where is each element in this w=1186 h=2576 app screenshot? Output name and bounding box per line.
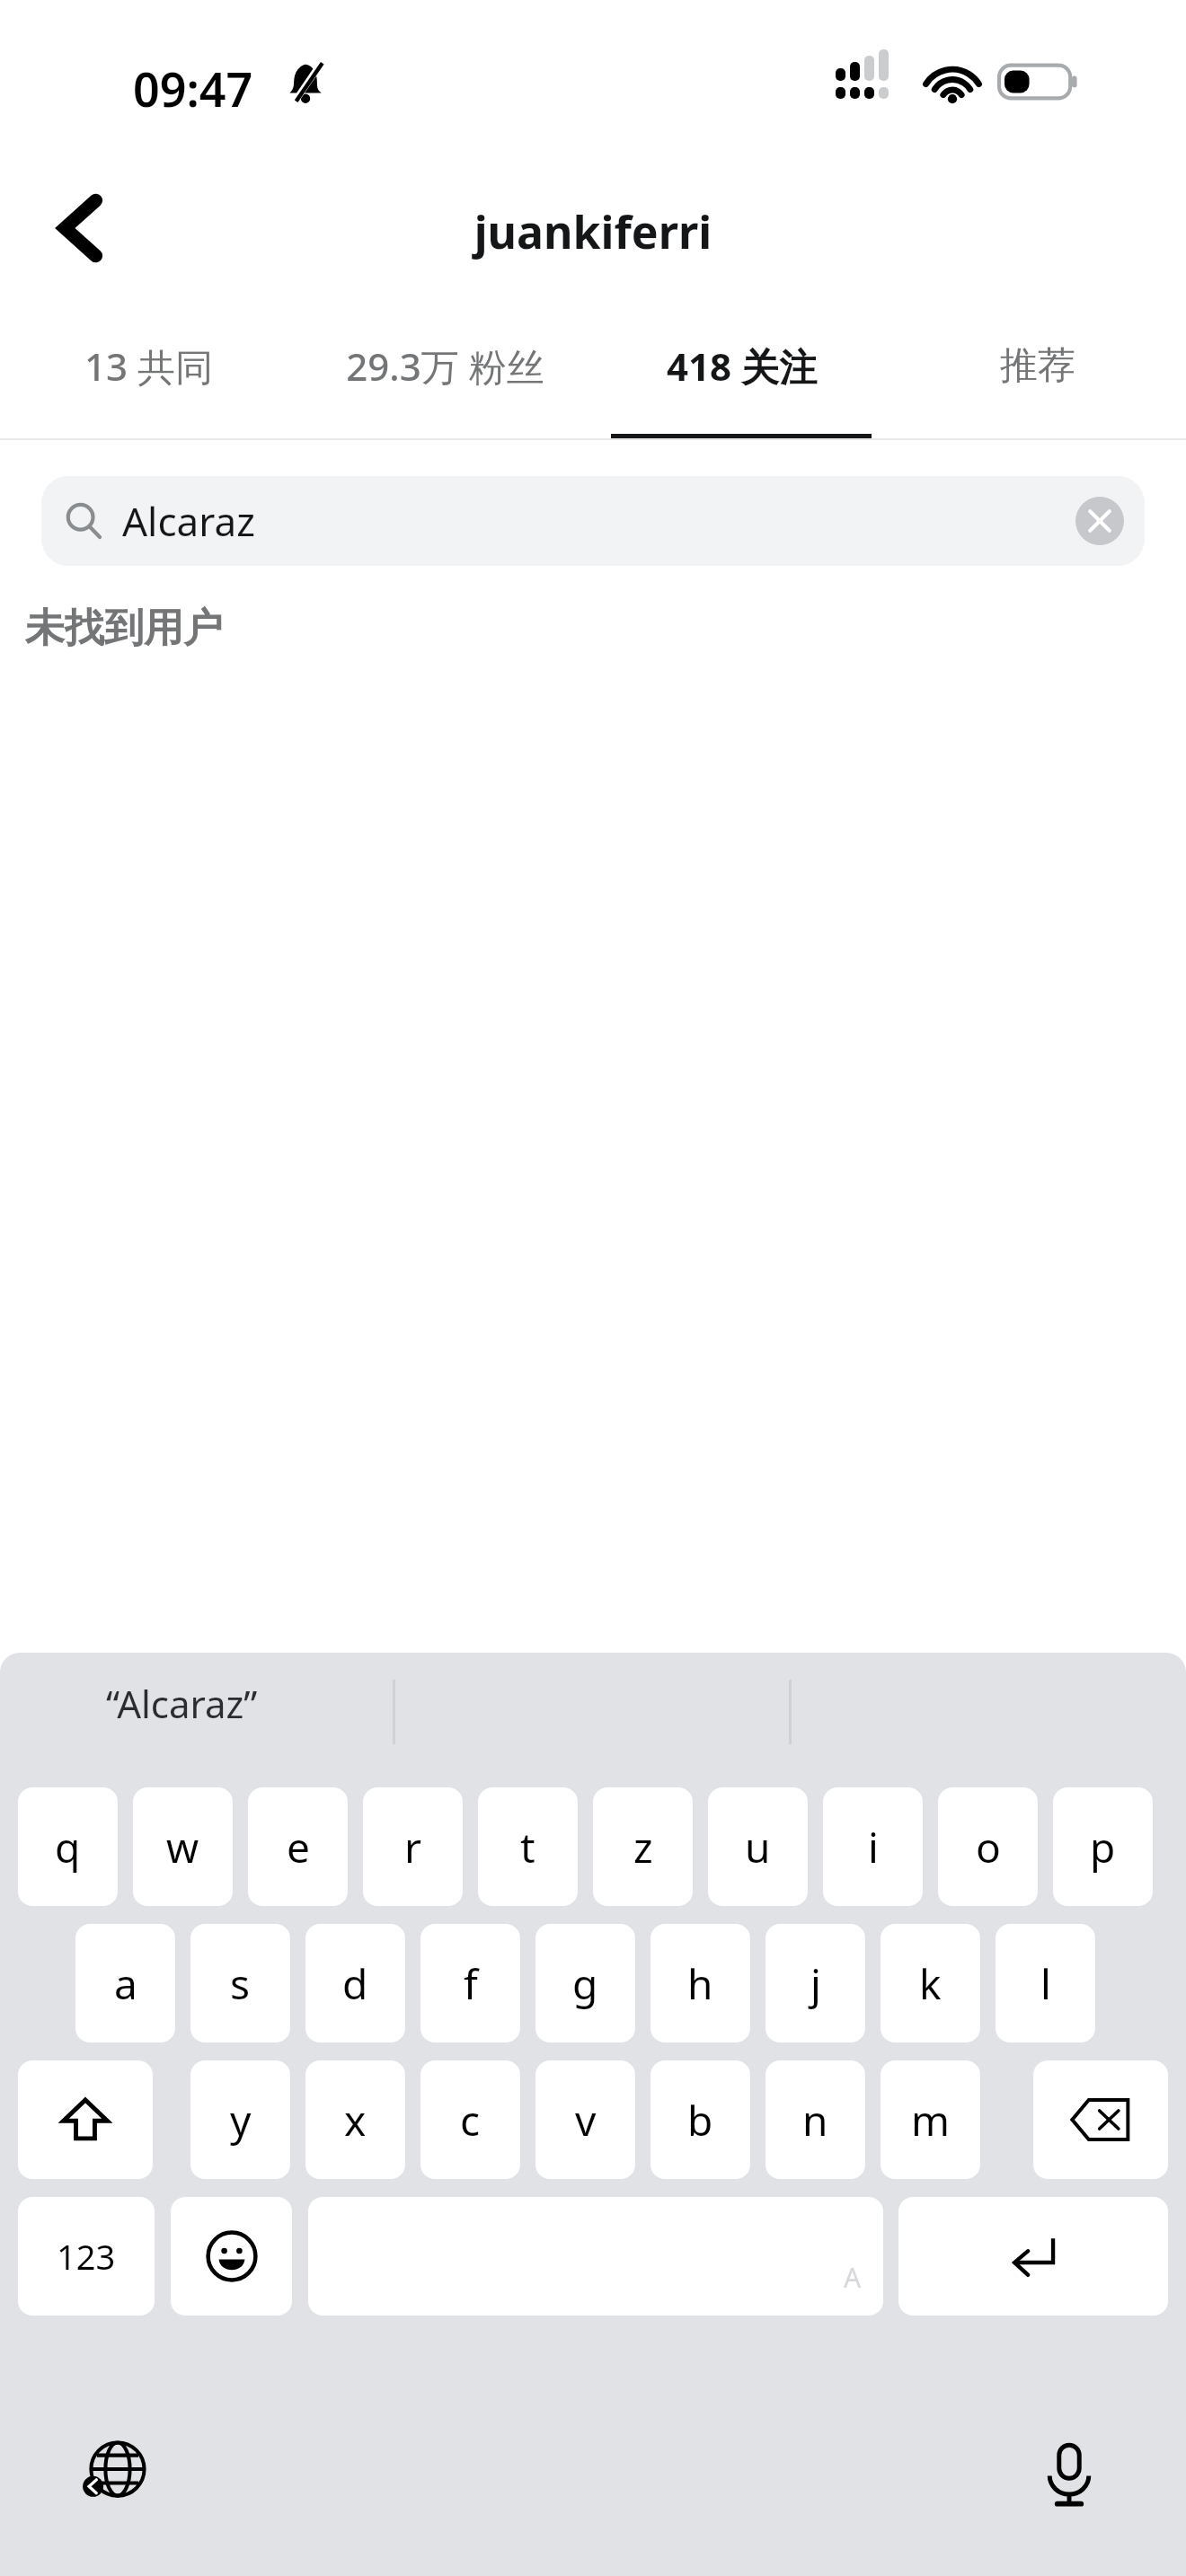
button[interactable]: i bbox=[823, 1787, 923, 1906]
staticText: i bbox=[868, 1819, 879, 1875]
staticText: u bbox=[745, 1819, 771, 1875]
button[interactable]: w bbox=[133, 1787, 233, 1906]
staticText: 未找到用户 bbox=[25, 604, 223, 653]
button[interactable]: Shift bbox=[18, 2060, 153, 2179]
staticText: n bbox=[802, 2092, 828, 2148]
button[interactable]: 123 bbox=[18, 2197, 155, 2316]
staticText: k bbox=[919, 1955, 942, 2012]
button[interactable]: 29.3万 粉丝 bbox=[296, 313, 593, 440]
button[interactable]: h bbox=[651, 1924, 750, 2042]
staticText: 29.3万 粉丝 bbox=[346, 340, 544, 392]
staticText: y bbox=[230, 2092, 252, 2148]
button[interactable]: t bbox=[478, 1787, 578, 1906]
button[interactable]: Return bbox=[898, 2197, 1168, 2316]
staticText: g bbox=[572, 1955, 598, 2012]
button[interactable]: s bbox=[190, 1924, 290, 2042]
staticText: x bbox=[344, 2092, 367, 2148]
button[interactable]: c bbox=[420, 2060, 520, 2179]
button[interactable]: e bbox=[248, 1787, 348, 1906]
button[interactable]: g bbox=[535, 1924, 635, 2042]
button[interactable]: a bbox=[75, 1924, 175, 2042]
button[interactable]: u bbox=[708, 1787, 808, 1906]
button[interactable]: d bbox=[305, 1924, 405, 2042]
staticText: A bbox=[844, 2259, 862, 2296]
staticText: 09:47 bbox=[133, 57, 253, 120]
button[interactable]: x bbox=[305, 2060, 405, 2179]
button[interactable]: f bbox=[420, 1924, 520, 2042]
staticText: c bbox=[460, 2092, 481, 2148]
button[interactable]: b bbox=[651, 2060, 750, 2179]
button[interactable]: 13 共同 bbox=[0, 313, 296, 440]
button[interactable]: y bbox=[190, 2060, 290, 2179]
button[interactable]: Backspace bbox=[1033, 2060, 1168, 2179]
button[interactable]: n bbox=[766, 2060, 865, 2179]
button[interactable]: Emoji bbox=[171, 2197, 292, 2316]
staticText: d bbox=[342, 1955, 368, 2012]
button[interactable]: v bbox=[535, 2060, 635, 2179]
button[interactable]: j bbox=[766, 1924, 865, 2042]
button[interactable]: q bbox=[18, 1787, 118, 1906]
button[interactable]: Voice input bbox=[1024, 2427, 1114, 2517]
staticText: q bbox=[55, 1819, 81, 1875]
staticText: 推荐 bbox=[1000, 342, 1075, 390]
staticText: b bbox=[687, 2092, 713, 2148]
staticText: l bbox=[1040, 1955, 1051, 2012]
staticText: 418 关注 bbox=[667, 340, 817, 392]
button[interactable]: l bbox=[996, 1924, 1095, 2042]
staticText: 13 共同 bbox=[84, 340, 213, 392]
staticText: j bbox=[810, 1955, 821, 2012]
staticText: h bbox=[687, 1955, 713, 2012]
staticText: s bbox=[230, 1955, 251, 2012]
button[interactable]: 推荐 bbox=[889, 313, 1186, 440]
button[interactable]: k bbox=[881, 1924, 980, 2042]
staticText: e bbox=[287, 1819, 310, 1875]
button[interactable]: o bbox=[938, 1787, 1038, 1906]
staticText: p bbox=[1090, 1819, 1116, 1875]
staticText: juankiferri bbox=[0, 201, 1186, 262]
staticText: f bbox=[464, 1955, 478, 2012]
staticText: 123 bbox=[57, 2233, 116, 2280]
button[interactable]: r bbox=[363, 1787, 463, 1906]
button[interactable]: 418 关注 bbox=[593, 313, 889, 440]
button[interactable]: z bbox=[593, 1787, 693, 1906]
staticText: m bbox=[911, 2092, 951, 2148]
staticText: t bbox=[520, 1819, 535, 1875]
staticText: v bbox=[575, 2092, 597, 2148]
staticText: w bbox=[166, 1819, 199, 1875]
button[interactable]: “Alcaraz” bbox=[106, 1678, 258, 1729]
button[interactable]: p bbox=[1053, 1787, 1153, 1906]
staticText: r bbox=[404, 1819, 421, 1875]
button[interactable]: Back bbox=[31, 178, 131, 278]
button[interactable]: m bbox=[881, 2060, 980, 2179]
staticText: Alcaraz bbox=[122, 494, 255, 548]
button[interactable]: Alcaraz bbox=[41, 476, 1145, 566]
button[interactable]: Change keyboard language bbox=[70, 2427, 160, 2517]
staticText: z bbox=[633, 1819, 653, 1875]
staticText: o bbox=[976, 1819, 1001, 1875]
button[interactable]: Clear search bbox=[1071, 492, 1128, 550]
staticText: a bbox=[114, 1955, 137, 2012]
